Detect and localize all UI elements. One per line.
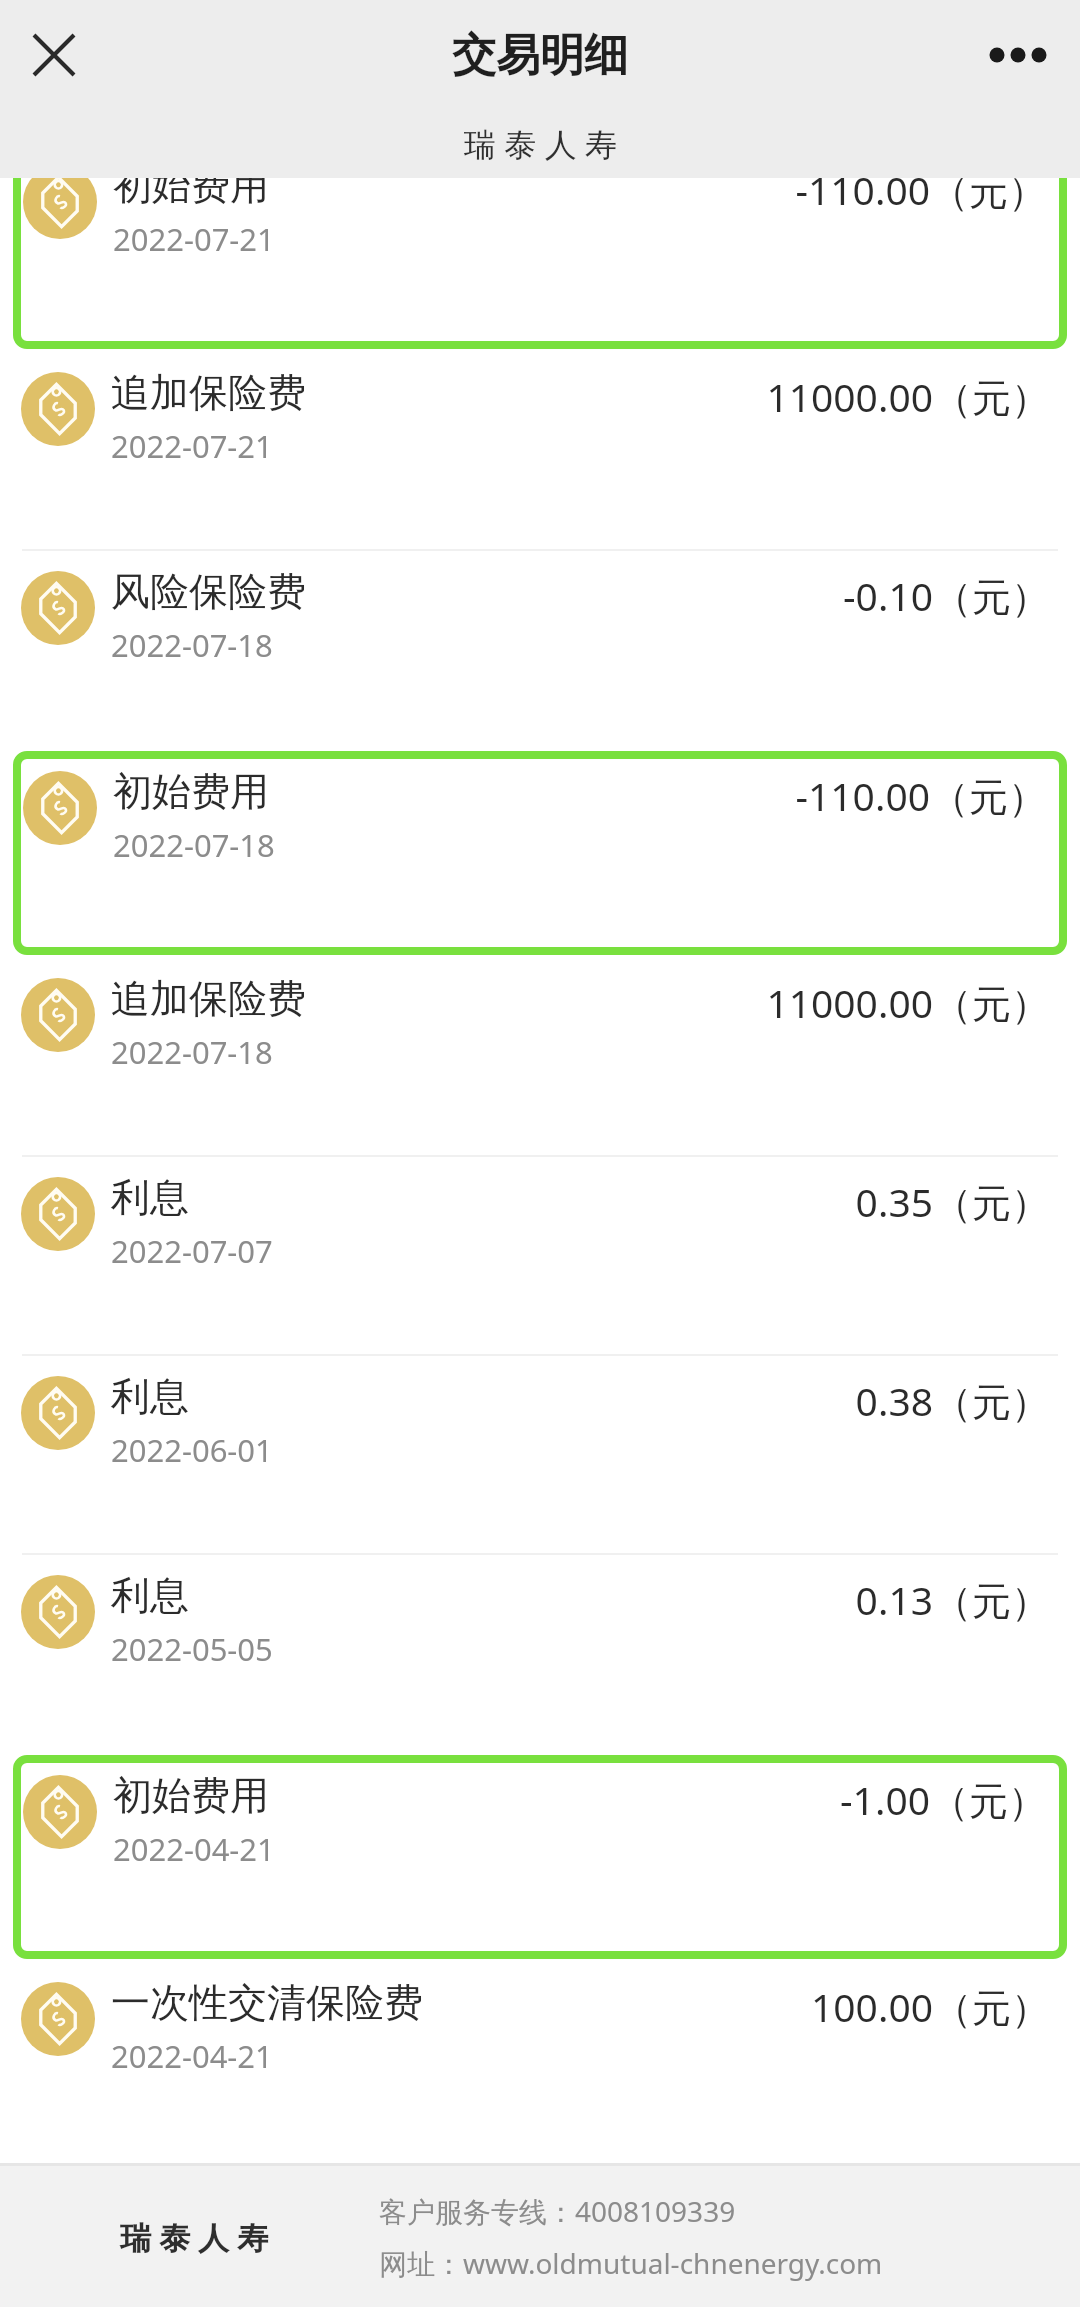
staticText: -1.00（元） xyxy=(840,1773,1047,1826)
staticText: 2022-07-18 xyxy=(111,1031,273,1073)
button[interactable]: 初始费用 xyxy=(13,1755,1067,1959)
staticText: 100.00（元） xyxy=(811,1980,1050,2033)
button[interactable]: Close xyxy=(16,17,92,93)
staticText: 瑞 泰 人 寿 xyxy=(464,122,617,166)
staticText: 2022-04-21 xyxy=(111,2035,273,2077)
staticText: 利息 xyxy=(111,1571,189,1620)
staticText: 11000.00（元） xyxy=(766,370,1050,423)
button[interactable]: 追加保险费 xyxy=(0,958,1080,1155)
staticText: 网址：www.oldmutual-chnenergy.com xyxy=(379,2244,883,2282)
staticText: 客户服务专线：4008109339 xyxy=(379,2192,736,2230)
staticText: -0.10（元） xyxy=(843,569,1050,622)
button[interactable]: 风险保险费 xyxy=(0,551,1080,748)
staticText: 交易明细 xyxy=(452,28,628,83)
staticText: 2022-07-18 xyxy=(111,624,273,666)
button[interactable]: 追加保险费 xyxy=(0,352,1080,549)
staticText: 利息 xyxy=(111,1372,189,1421)
staticText: 2022-07-18 xyxy=(113,824,275,866)
staticText: 0.35（元） xyxy=(855,1175,1050,1228)
staticText: 2022-07-21 xyxy=(111,425,273,467)
staticText: 利息 xyxy=(111,1173,189,1222)
staticText: 瑞 泰 人 寿 xyxy=(120,2216,269,2258)
staticText: 2022-05-05 xyxy=(111,1628,273,1670)
button[interactable]: 利息 xyxy=(0,1157,1080,1354)
staticText: -110.00（元） xyxy=(795,769,1047,822)
staticText: 2022-06-01 xyxy=(111,1429,273,1471)
staticText: 追加保险费 xyxy=(111,368,306,417)
button[interactable]: 初始费用 xyxy=(13,751,1067,955)
staticText: 0.38（元） xyxy=(855,1374,1050,1427)
staticText: 2022-07-07 xyxy=(111,1230,273,1272)
staticText: 0.13（元） xyxy=(855,1573,1050,1626)
staticText: 11000.00（元） xyxy=(766,976,1050,1029)
staticText: -110.00（元） xyxy=(795,163,1047,216)
button[interactable]: More options xyxy=(978,15,1058,95)
staticText: 风险保险费 xyxy=(111,567,306,616)
staticText: 一次性交清保险费 xyxy=(111,1978,423,2027)
staticText: 2022-04-21 xyxy=(113,1828,275,1870)
button[interactable]: 利息 xyxy=(0,1555,1080,1752)
staticText: 初始费用 xyxy=(113,767,269,816)
button[interactable]: 利息 xyxy=(0,1356,1080,1553)
button[interactable]: 初始费用 xyxy=(13,145,1067,349)
staticText: 追加保险费 xyxy=(111,974,306,1023)
staticText: 2022-07-21 xyxy=(113,218,275,260)
staticText: 初始费用 xyxy=(113,161,269,210)
button[interactable]: 一次性交清保险费 xyxy=(0,1962,1080,2159)
staticText: 初始费用 xyxy=(113,1771,269,1820)
